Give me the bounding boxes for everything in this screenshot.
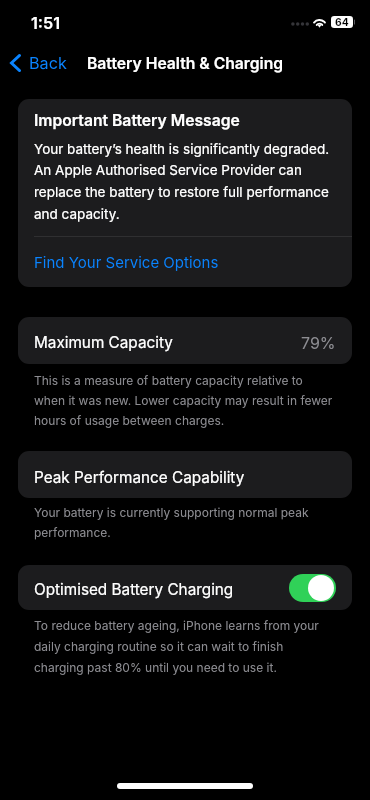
button[interactable]: Find Your Service Options	[18, 237, 352, 287]
staticText: Important Battery Message	[34, 111, 240, 130]
button[interactable]: Maximum Capacity	[18, 317, 352, 364]
staticText: Back	[29, 53, 67, 73]
staticText: Battery Health & Charging	[87, 54, 284, 73]
staticText: To reduce battery ageing, iPhone learns …	[34, 618, 336, 675]
staticText: 79%	[301, 333, 336, 352]
staticText: Find Your Service Options	[34, 253, 219, 271]
staticText: This is a measure of battery capacity re…	[34, 373, 336, 428]
staticText: 1:51	[31, 13, 61, 33]
staticText: 64	[335, 16, 349, 28]
staticText: Peak Performance Capability	[34, 468, 245, 487]
button[interactable]: Optimised Battery Charging toggle	[289, 574, 336, 602]
staticText: Maximum Capacity	[34, 333, 173, 352]
staticText: Your battery’s health is significantly d…	[34, 141, 336, 223]
button[interactable]: Peak Performance Capability	[18, 451, 352, 498]
staticText: Optimised Battery Charging	[34, 580, 234, 599]
staticText: Your battery is currently supporting nor…	[34, 505, 336, 540]
button[interactable]: Back	[4, 49, 75, 77]
button[interactable]: Optimised Battery Charging	[18, 565, 352, 610]
